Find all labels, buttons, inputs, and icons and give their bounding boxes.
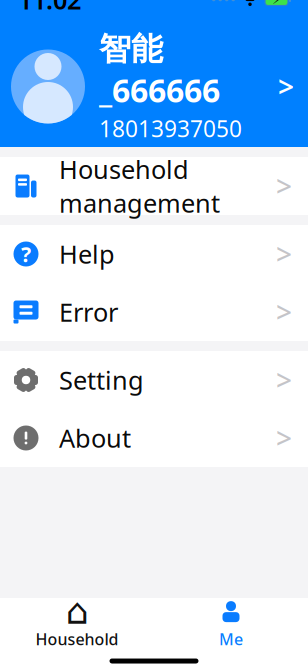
staticText: > (278, 68, 294, 105)
staticText: 18013937050 (99, 113, 242, 143)
staticText: Me (219, 628, 243, 650)
button[interactable]: About (0, 409, 308, 467)
button[interactable]: Household management (0, 157, 308, 215)
staticText: > (276, 293, 292, 331)
staticText: 11:02 (18, 0, 81, 16)
button[interactable]: ? (0, 225, 308, 283)
button[interactable]: Me (154, 598, 308, 650)
staticText: > (276, 361, 292, 399)
staticText: > (276, 419, 292, 457)
staticText: About (59, 421, 131, 455)
staticText: > (276, 235, 292, 273)
staticText: Setting (59, 363, 144, 397)
staticText: 智能_666666 (99, 29, 220, 111)
staticText: Household management (59, 152, 220, 220)
staticText: Error (59, 295, 118, 329)
button[interactable]: 智能_666666 (0, 29, 308, 143)
staticText: > (276, 167, 292, 205)
staticText: Help (59, 237, 115, 271)
button[interactable]: Setting (0, 351, 308, 409)
staticText: ⌂ (65, 591, 88, 632)
button[interactable]: Error (0, 283, 308, 341)
staticText: ? (21, 240, 31, 268)
button[interactable]: ⌂ (0, 598, 154, 650)
staticText: Household (35, 628, 118, 650)
staticText: ⚡︎ (272, 0, 281, 7)
